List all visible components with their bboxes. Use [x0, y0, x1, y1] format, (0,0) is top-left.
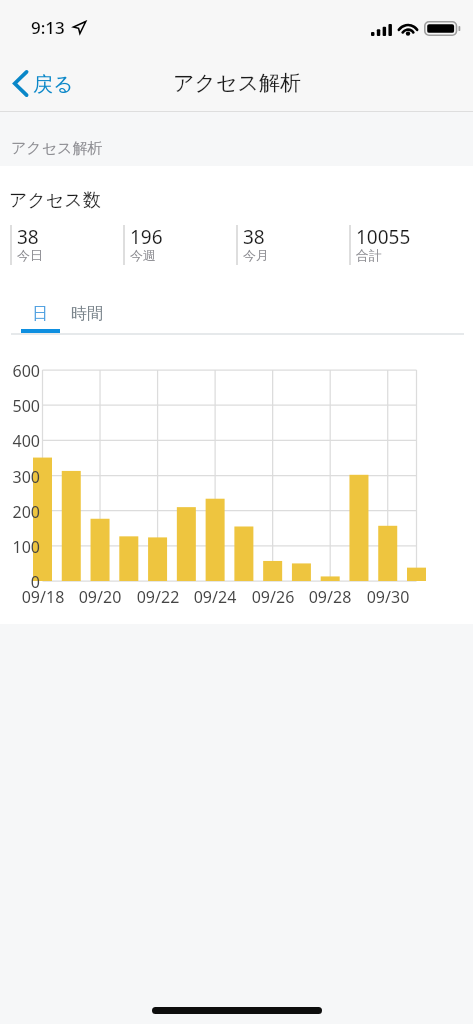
staticText: 今日	[17, 247, 43, 263]
other: 戻る	[12, 69, 29, 98]
staticText: アクセス数	[9, 189, 101, 212]
staticText: 38	[17, 224, 39, 250]
staticText: 今月	[243, 247, 269, 263]
staticText: 09/18	[13, 586, 73, 608]
button[interactable]: 日	[20, 304, 60, 339]
button[interactable]: 10055	[349, 225, 462, 265]
staticText: 0	[0, 571, 40, 593]
staticText: アクセス解析	[173, 70, 301, 96]
button[interactable]: 38	[10, 225, 123, 265]
button[interactable]: 時間	[66, 304, 107, 339]
staticText: 戻る	[33, 72, 74, 97]
button[interactable]: 196	[123, 225, 236, 265]
staticText: 500	[0, 395, 40, 417]
staticText: 9:13	[31, 16, 65, 39]
staticText: 100	[0, 536, 40, 558]
staticText: 300	[0, 466, 40, 488]
staticText: 日	[32, 304, 48, 324]
staticText: 600	[0, 360, 40, 382]
staticText: アクセス解析	[11, 139, 103, 158]
staticText: 合計	[356, 247, 382, 263]
staticText: 09/24	[185, 586, 245, 608]
staticText: 09/30	[358, 586, 418, 608]
button[interactable]: 38	[236, 225, 349, 265]
staticText: 10055	[356, 224, 411, 250]
staticText: 09/28	[300, 586, 360, 608]
staticText: 200	[0, 501, 40, 523]
staticText: 今週	[130, 247, 156, 263]
staticText: 38	[243, 224, 265, 250]
staticText: 09/26	[243, 586, 303, 608]
staticText: 時間	[71, 304, 103, 324]
staticText: 196	[130, 224, 163, 250]
staticText: 09/20	[70, 586, 130, 608]
button[interactable]: 戻る	[0, 64, 84, 105]
staticText: 09/22	[128, 586, 188, 608]
staticText: 400	[0, 430, 40, 452]
